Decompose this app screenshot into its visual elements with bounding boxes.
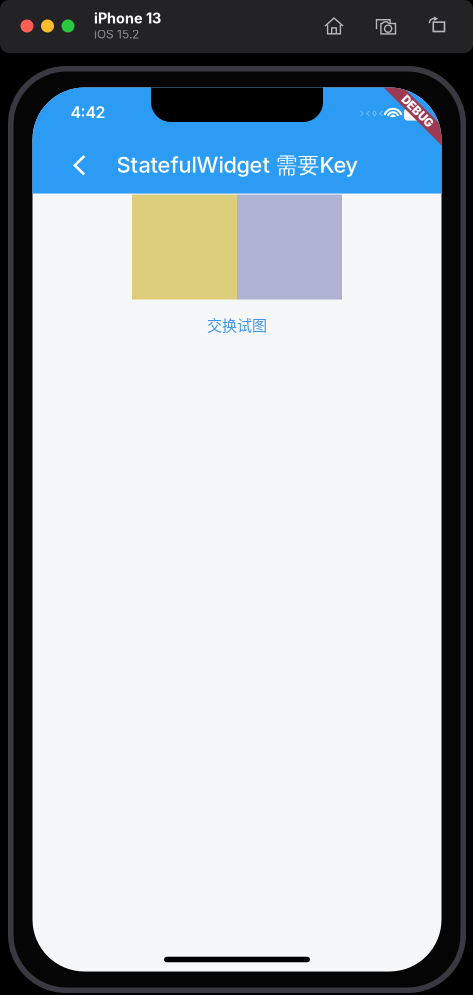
- staticText: 4:42: [70, 103, 105, 122]
- staticText: DEBUG: [397, 105, 437, 118]
- staticText: iOS 15.2: [94, 27, 139, 41]
- button[interactable]: Close: [20, 19, 33, 32]
- button[interactable]: Home: [319, 11, 349, 41]
- button[interactable]: 交换试图: [191, 304, 283, 344]
- staticText: 交换试图: [207, 314, 267, 335]
- button[interactable]: Zoom: [61, 19, 74, 32]
- staticText: StatefulWidget 需要Key: [116, 152, 357, 179]
- button[interactable]: Screenshot: [371, 11, 401, 41]
- button[interactable]: Minimize: [41, 19, 54, 32]
- staticText: iPhone 13: [94, 10, 161, 27]
- button[interactable]: Rotate: [423, 11, 453, 41]
- button[interactable]: Back: [55, 141, 103, 189]
